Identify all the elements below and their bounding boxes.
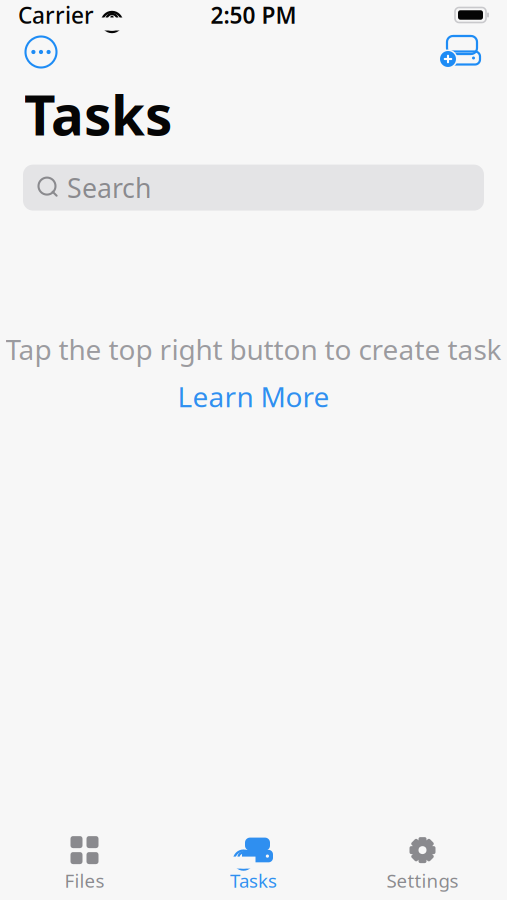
staticText: Learn More bbox=[177, 378, 329, 415]
staticText: Tasks bbox=[230, 868, 277, 893]
button[interactable]: Files bbox=[0, 829, 169, 899]
staticText: Tap the top right button to create task bbox=[5, 331, 501, 368]
staticText: Tasks bbox=[24, 78, 172, 151]
staticText: Search bbox=[67, 170, 151, 205]
button[interactable]: Settings bbox=[338, 829, 507, 899]
staticText: Files bbox=[64, 868, 104, 893]
button[interactable]: Learn More bbox=[171, 376, 335, 417]
button[interactable]: More options bbox=[16, 31, 66, 73]
staticText: Settings bbox=[386, 868, 458, 893]
button[interactable]: Add task bbox=[433, 31, 491, 73]
staticText: Carrier bbox=[18, 0, 94, 30]
staticText: 2:50 PM bbox=[210, 0, 296, 30]
button[interactable]: Tasks bbox=[169, 829, 338, 899]
